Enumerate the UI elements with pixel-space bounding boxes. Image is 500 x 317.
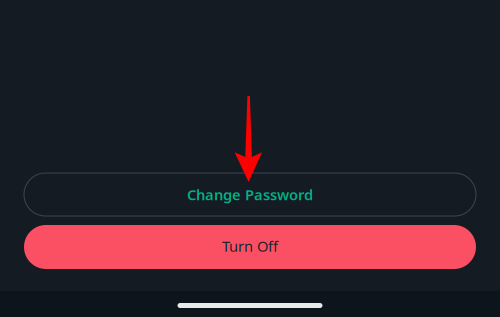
staticText: Change Password	[187, 185, 313, 204]
staticText: Turn Off	[222, 236, 278, 256]
button[interactable]: Turn Off	[24, 225, 476, 269]
button[interactable]: Change Password	[24, 173, 476, 216]
